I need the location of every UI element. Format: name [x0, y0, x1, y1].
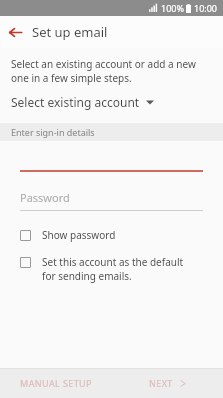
staticText: 100% [161, 2, 184, 14]
button[interactable]: Show password [0, 225, 223, 245]
staticText: Show password [42, 228, 116, 242]
staticText: 10:00 [194, 2, 218, 14]
button[interactable]: Select existing account [0, 91, 223, 113]
staticText: Select an existing account or add a new … [11, 57, 212, 85]
staticText: Set up email [32, 23, 108, 41]
staticText: Set this account as the default [42, 255, 184, 269]
staticText: for sending emails. [42, 269, 132, 283]
button[interactable]: Password [0, 190, 223, 211]
button[interactable]: Set this account as the default [0, 252, 223, 286]
staticText: Password [20, 190, 70, 205]
button[interactable]: NEXT [111, 368, 223, 398]
button[interactable]: MANUAL SETUP [0, 368, 111, 398]
button[interactable]: Navigate up [0, 17, 30, 47]
button[interactable] [0, 157, 223, 172]
staticText: NEXT [149, 377, 173, 389]
staticText: MANUAL SETUP [20, 377, 92, 389]
staticText: Enter sign-in details [11, 126, 95, 138]
staticText: Select existing account [11, 94, 140, 110]
